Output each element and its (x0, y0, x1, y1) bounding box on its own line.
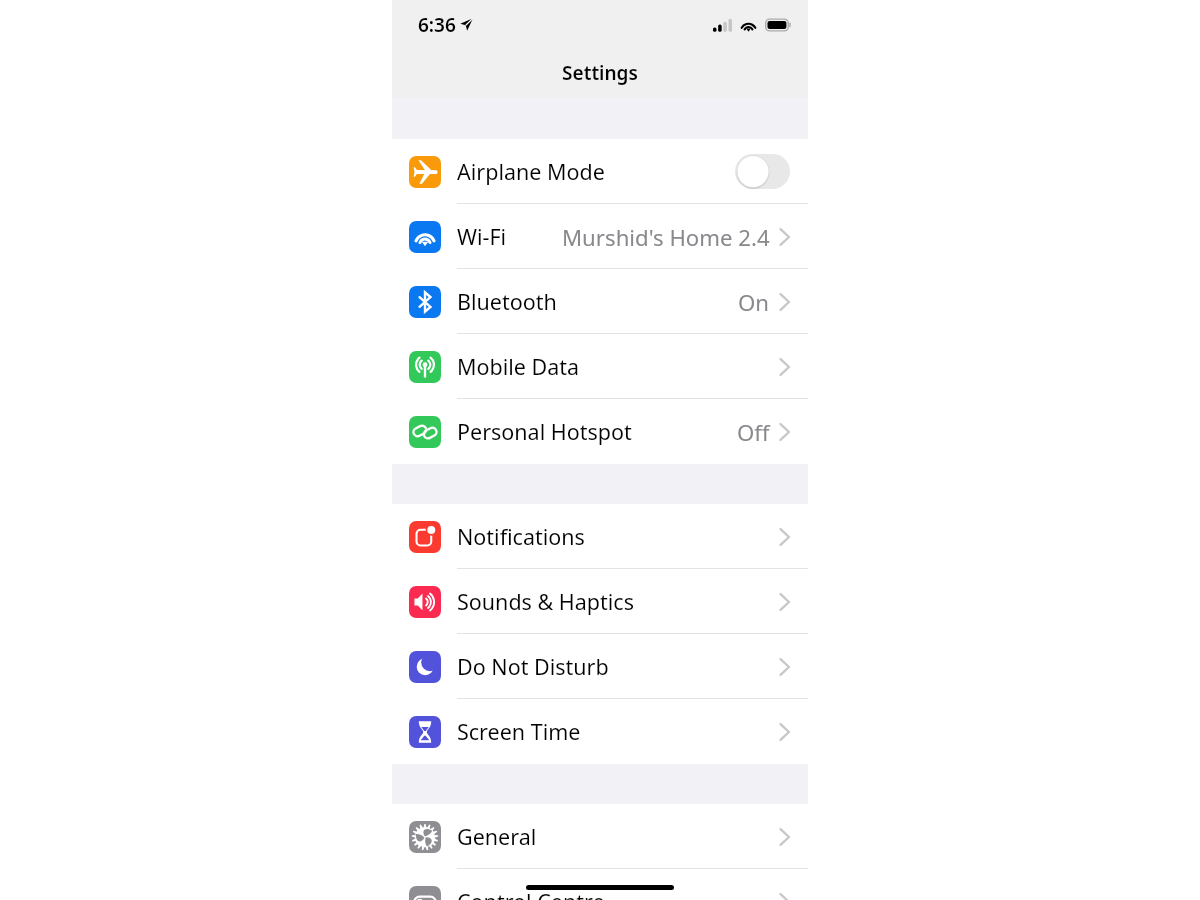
staticText: Control Centre (457, 887, 605, 900)
staticText: Settings (392, 60, 808, 86)
staticText: Notifications (457, 522, 585, 551)
staticText: On (738, 287, 770, 317)
button[interactable]: Airplane Mode (392, 139, 808, 204)
button[interactable]: Wi-Fi (392, 204, 808, 269)
button[interactable]: General (392, 804, 808, 869)
staticText: Mobile Data (457, 352, 580, 381)
staticText: General (457, 822, 537, 851)
staticText: 6:36 (418, 12, 456, 38)
staticText: Off (737, 417, 770, 447)
staticText: Wi-Fi (457, 222, 507, 251)
button[interactable]: Do Not Disturb (392, 634, 808, 699)
staticText: Personal Hotspot (457, 417, 632, 446)
button[interactable]: Notifications (392, 504, 808, 569)
button[interactable]: Screen Time (392, 699, 808, 764)
staticText: Murshid's Home 2.4 (562, 222, 770, 252)
staticText: Screen Time (457, 717, 581, 746)
button[interactable]: Sounds & Haptics (392, 569, 808, 634)
button[interactable]: Airplane Mode toggle (735, 154, 790, 189)
staticText: Bluetooth (457, 287, 557, 316)
button[interactable]: Personal Hotspot (392, 399, 808, 464)
button[interactable]: Mobile Data (392, 334, 808, 399)
button[interactable]: Control Centre (392, 869, 808, 900)
staticText: Airplane Mode (457, 157, 605, 186)
staticText: Sounds & Haptics (457, 587, 634, 616)
staticText: Do Not Disturb (457, 652, 609, 681)
button[interactable]: Bluetooth (392, 269, 808, 334)
